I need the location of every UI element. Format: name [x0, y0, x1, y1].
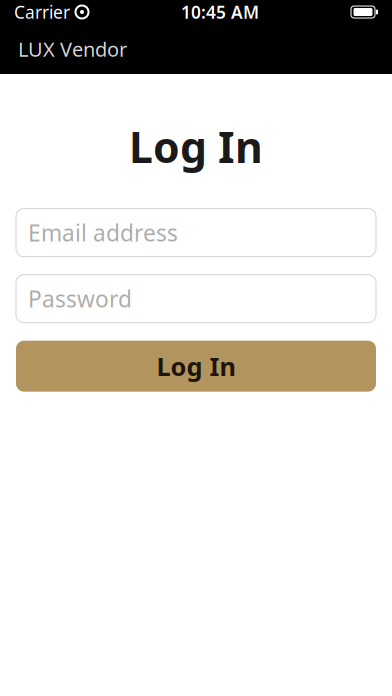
staticText: Carrier — [14, 0, 70, 23]
staticText: Password — [28, 284, 132, 314]
staticText: LUX Vendor — [18, 36, 127, 62]
staticText: Log In — [156, 349, 235, 383]
button[interactable]: Log In — [16, 341, 376, 392]
staticText: Email address — [28, 218, 178, 248]
staticText: Log In — [129, 118, 263, 175]
staticText: 10:45 AM — [181, 0, 259, 23]
